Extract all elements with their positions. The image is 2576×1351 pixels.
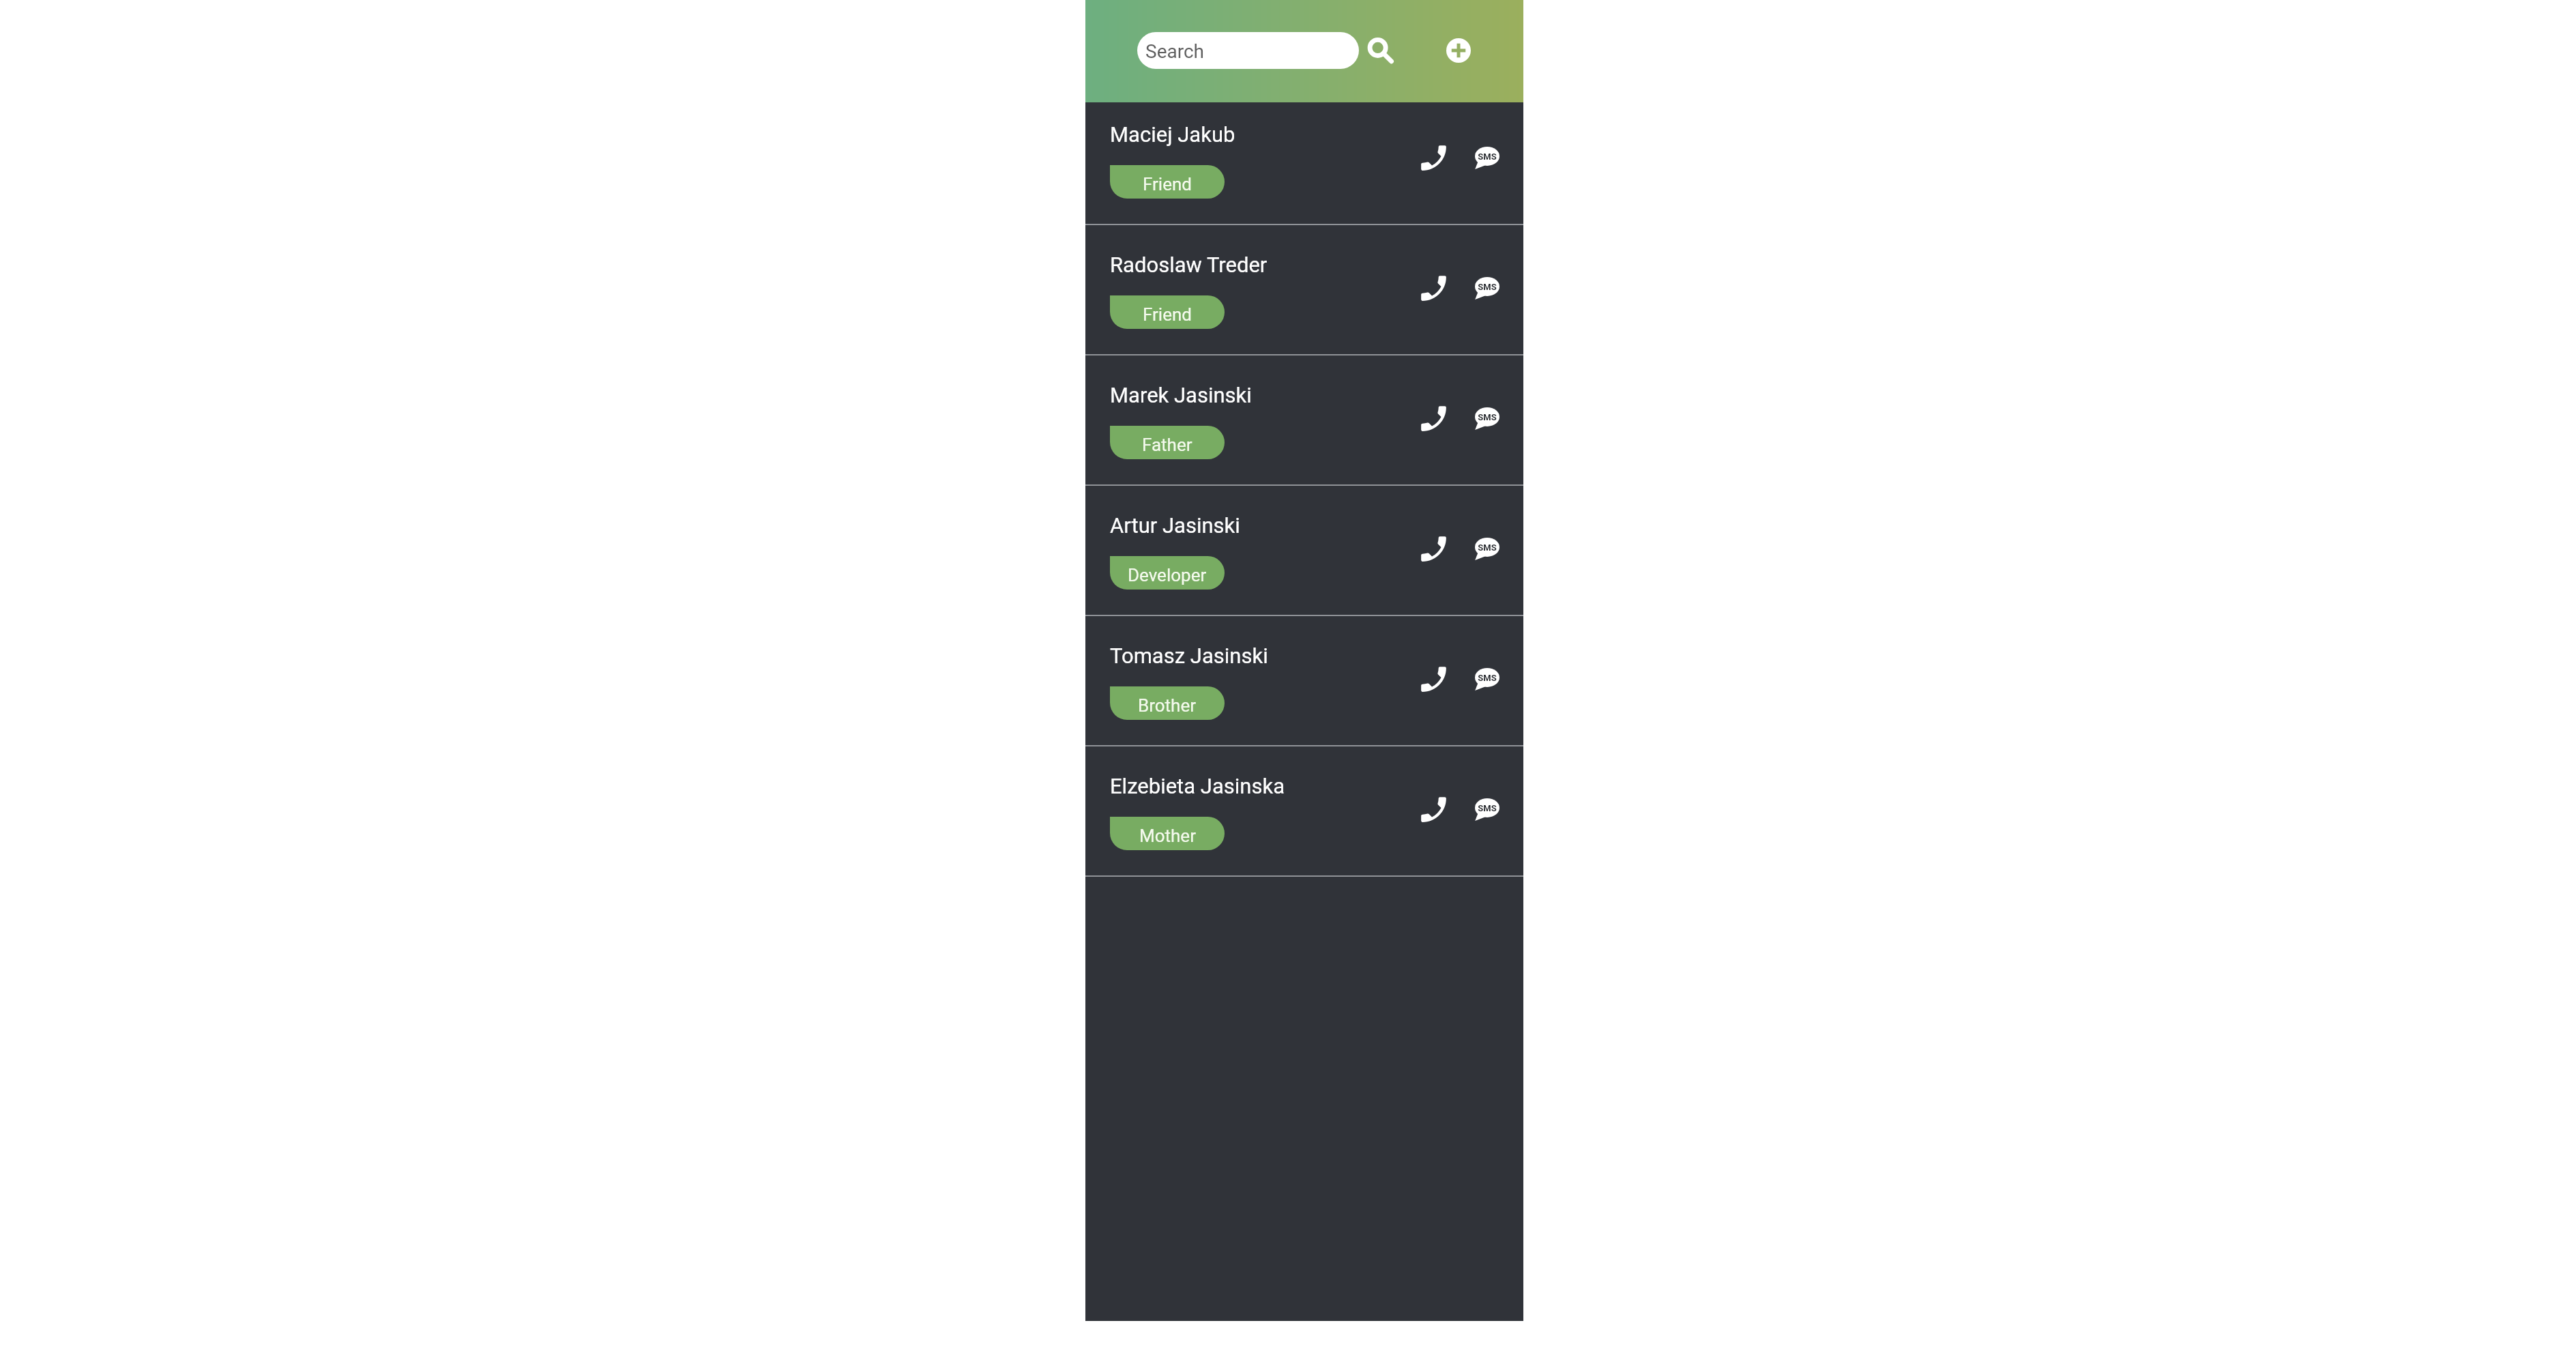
staticText: Maciej Jakub [1110,122,1235,147]
button[interactable]: Call [1413,401,1452,440]
button[interactable]: Send SMS [1467,270,1507,310]
button[interactable]: Friend [1110,295,1225,329]
button[interactable]: Send SMS [1467,531,1507,570]
button[interactable]: Search [1363,33,1399,69]
button[interactable]: Brother [1110,686,1225,720]
staticText: Father [1142,435,1192,455]
button[interactable]: Maciej Jakub [1085,102,1523,224]
staticText: Tomasz Jasinski [1110,643,1268,668]
button[interactable]: Send SMS [1467,140,1507,179]
button[interactable]: Send SMS [1467,401,1507,440]
button[interactable]: Add contact [1441,33,1476,68]
button[interactable]: Call [1413,140,1452,179]
button[interactable]: Call [1413,791,1452,831]
staticText: Radoslaw Treder [1110,252,1268,277]
button[interactable]: Call [1413,270,1452,310]
staticText: SMS [1478,151,1497,162]
button[interactable]: Friend [1110,165,1225,199]
staticText: Developer [1128,565,1207,585]
staticText: SMS [1478,673,1497,683]
button[interactable]: Tomasz Jasinski [1085,616,1523,745]
staticText: Mother [1139,826,1196,846]
button[interactable]: Send SMS [1467,661,1507,701]
button[interactable]: Marek Jasinski [1085,355,1523,484]
staticText: Brother [1138,695,1197,716]
staticText: SMS [1478,542,1497,553]
button[interactable]: Search [1137,32,1359,69]
staticText: Artur Jasinski [1110,513,1240,538]
staticText: SMS [1478,412,1497,422]
staticText: Friend [1143,304,1192,325]
staticText: Marek Jasinski [1110,383,1252,407]
staticText: SMS [1478,803,1497,813]
button[interactable]: Developer [1110,556,1225,590]
button[interactable]: Elzebieta Jasinska [1085,746,1523,875]
staticText: Friend [1143,174,1192,194]
button[interactable]: Artur Jasinski [1085,486,1523,615]
button[interactable]: Mother [1110,817,1225,850]
button[interactable]: Father [1110,426,1225,459]
staticText: Elzebieta Jasinska [1110,774,1285,798]
button[interactable]: Call [1413,531,1452,570]
button[interactable]: Radoslaw Treder [1085,225,1523,354]
button[interactable]: Send SMS [1467,791,1507,831]
button[interactable]: Call [1413,661,1452,701]
staticText: Search [1145,40,1205,63]
staticText: SMS [1478,282,1497,292]
